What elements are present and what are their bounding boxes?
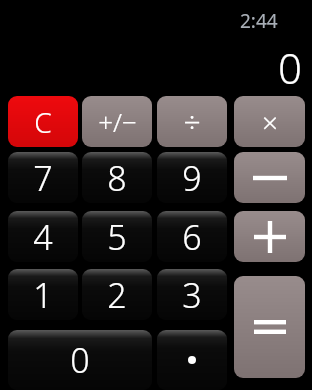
staticText: 1 xyxy=(33,272,53,318)
button[interactable]: 2 xyxy=(82,269,152,320)
staticText: 7 xyxy=(33,155,53,201)
button[interactable]: 1 xyxy=(8,269,78,320)
staticText: +/− xyxy=(98,104,137,139)
button[interactable]: Divide xyxy=(157,96,227,147)
staticText: 2 xyxy=(107,272,127,318)
button[interactable]: Decimal point xyxy=(157,330,227,390)
button[interactable]: Multiply xyxy=(234,96,305,147)
button[interactable]: Minus xyxy=(234,152,305,203)
staticText: 3 xyxy=(182,272,202,318)
button[interactable]: 7 xyxy=(8,152,78,203)
button[interactable]: Plus xyxy=(234,211,305,262)
button[interactable]: Plus minus xyxy=(82,96,152,147)
button[interactable]: 4 xyxy=(8,211,78,262)
button[interactable]: 8 xyxy=(82,152,152,203)
staticText: ÷ xyxy=(183,101,201,142)
staticText: 2:44 xyxy=(240,8,278,34)
staticText: × xyxy=(262,103,278,141)
button[interactable]: 3 xyxy=(157,269,227,320)
staticText: C xyxy=(34,103,52,141)
button[interactable]: C xyxy=(8,96,78,147)
button[interactable]: 9 xyxy=(157,152,227,203)
button[interactable]: 6 xyxy=(157,211,227,262)
button[interactable]: 0 xyxy=(8,330,152,390)
button[interactable]: 5 xyxy=(82,211,152,262)
staticText: 5 xyxy=(107,214,127,260)
staticText: 4 xyxy=(33,214,53,260)
staticText: 0 xyxy=(70,337,90,383)
staticText: 9 xyxy=(182,155,202,201)
staticText: 8 xyxy=(107,155,127,201)
staticText: 6 xyxy=(182,214,202,260)
staticText: 0 xyxy=(0,39,302,89)
button[interactable]: Equals xyxy=(234,276,305,378)
